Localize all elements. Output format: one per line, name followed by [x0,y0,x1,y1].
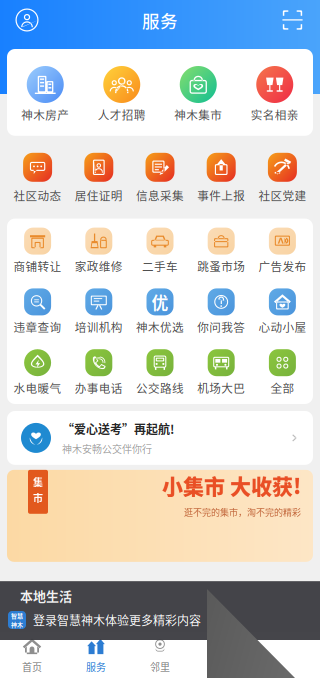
button[interactable]: 违章查询 [7,288,68,335]
staticText: 家政维修 [75,258,123,274]
staticText: 违章查询 [14,318,62,335]
staticText: 培训机构 [75,318,123,335]
button[interactable]: 公交路线 [129,349,191,396]
button[interactable]: 培训机构 [68,288,129,335]
button[interactable]: 你问我答 [191,288,252,335]
button[interactable]: 社区动态 [7,153,68,204]
staticText: 实名相亲 [251,106,299,123]
staticText: 神木安畅公交伴你行 [62,441,152,456]
button[interactable]: 办事电话 [68,349,129,396]
staticText: 智慧 神木 [11,611,23,629]
staticText: 居住证明 [75,187,123,204]
button[interactable]: 跳蚤市场 [191,228,252,274]
button[interactable]: 智慧 神木 [0,607,320,633]
staticText: 信息采集 [136,187,184,204]
button[interactable]: 居住证明 [68,153,129,204]
staticText: 逛不完的集市，淘不完的精彩 [184,505,301,518]
staticText: 机场大巴 [197,379,245,396]
staticText: 集 [33,475,43,489]
staticText: 社区党建 [258,187,306,204]
button[interactable]: 扫一扫 [270,1,320,38]
button[interactable]: 商铺转让 [7,228,68,274]
button[interactable]: 邻里 [128,636,192,674]
staticText: 水电暖气 [14,379,62,396]
staticText: 登录智慧神木体验更多精彩内容 [33,611,201,629]
button[interactable]: 人才招聘 [83,66,160,123]
staticText: 心动小屋 [258,318,306,335]
staticText: 广告发布 [258,258,306,274]
staticText: 二手车 [142,258,178,274]
staticText: 优 [151,290,168,314]
button[interactable]: “爱心送考”再起航! [0,404,320,465]
button[interactable]: 社区党建 [252,153,313,204]
button[interactable]: 全部 [252,349,313,396]
button[interactable]: 广告发布 [252,228,313,274]
staticText: 本地生活 [20,586,72,605]
button[interactable]: 个人中心 [0,0,51,40]
button[interactable]: 心动小屋 [252,288,313,335]
staticText: 神木房产 [21,106,69,123]
button[interactable]: 小集市 大收获! [0,465,320,562]
button[interactable]: 家政维修 [68,228,129,274]
staticText: 社区动态 [14,187,62,204]
staticText: 小集市 大收获! [162,470,301,500]
button[interactable]: 神木房产 [7,66,83,123]
button[interactable]: 水电暖气 [7,349,68,396]
staticText: “爱心送考”再起航! [62,420,174,437]
staticText: 你问我答 [197,318,245,335]
staticText: 服务 [86,659,106,674]
staticText: 神木优选 [136,318,184,335]
button[interactable]: 二手车 [129,228,191,274]
button[interactable]: 信息采集 [129,153,191,204]
staticText: 首页 [22,659,42,674]
staticText: 公交路线 [136,379,184,396]
staticText: 人才招聘 [98,106,146,123]
staticText: 市 [33,490,43,505]
staticText: 服务 [142,7,178,33]
button[interactable]: 首页 [0,636,64,674]
staticText: 办事电话 [75,379,123,396]
button[interactable]: 服务 [64,636,128,674]
staticText: 邻里 [150,659,170,674]
button[interactable]: 实名相亲 [236,66,313,123]
staticText: 商铺转让 [14,258,62,274]
staticText: 事件上报 [197,187,245,204]
button[interactable]: 神木集市 [160,66,236,123]
button[interactable]: 优 [129,288,191,335]
staticText: 全部 [270,379,294,396]
button[interactable]: 事件上报 [191,153,252,204]
button[interactable]: 机场大巴 [191,349,252,396]
staticText: 神木集市 [174,106,222,123]
staticText: 跳蚤市场 [197,258,245,274]
